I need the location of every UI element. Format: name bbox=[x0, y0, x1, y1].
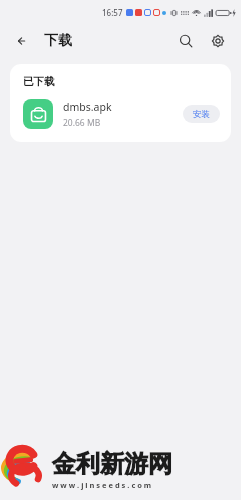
staticText: 16:57 bbox=[102, 7, 123, 18]
button[interactable]: 安装 bbox=[183, 105, 220, 123]
staticText: 安装 bbox=[193, 109, 210, 120]
staticText: 下载 bbox=[44, 32, 72, 50]
staticText: 已下载 bbox=[23, 75, 55, 88]
staticText: 金利新游网 bbox=[52, 449, 172, 479]
button[interactable]: Search bbox=[173, 28, 199, 54]
staticText: dmbs.apk bbox=[63, 100, 112, 114]
staticText: 20.66 MB bbox=[63, 117, 101, 129]
button[interactable]: dmbs.apk bbox=[23, 99, 220, 129]
button[interactable]: Back bbox=[10, 28, 36, 54]
staticText: w w w . j l n s e e d s . c o m bbox=[52, 480, 152, 490]
button[interactable]: Settings bbox=[205, 28, 231, 54]
